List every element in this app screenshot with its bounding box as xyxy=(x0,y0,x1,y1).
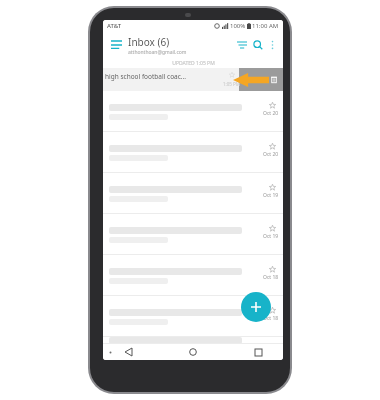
staticText: Oct 18 xyxy=(263,274,279,281)
button[interactable]: Star message xyxy=(103,337,283,344)
staticText: 100% xyxy=(230,22,246,30)
staticText: atthonthoan@gmail.com xyxy=(128,49,187,56)
button[interactable]: Star message xyxy=(103,214,283,255)
button[interactable]: Compose xyxy=(241,292,271,322)
staticText: high school football coac... xyxy=(105,72,187,81)
staticText: Oct 19 xyxy=(263,192,279,199)
staticText: Oct 20 xyxy=(263,110,279,117)
staticText: UPDATED 1:05 PM xyxy=(172,60,215,67)
button[interactable]: Inbox (6) xyxy=(128,35,234,56)
staticText: 11:00 AM xyxy=(252,22,279,30)
button[interactable]: Search xyxy=(250,37,266,53)
staticText: AT&T xyxy=(107,22,122,30)
button[interactable]: Star message xyxy=(267,100,277,110)
button[interactable]: Open navigation menu xyxy=(108,37,124,53)
staticText: Oct 19 xyxy=(263,233,279,240)
button[interactable]: Delete xyxy=(103,68,283,91)
button[interactable]: Star message xyxy=(267,141,277,151)
button[interactable]: Star message xyxy=(103,91,283,132)
button[interactable]: Star message xyxy=(267,264,277,274)
button[interactable]: Back xyxy=(121,345,135,359)
button[interactable]: Star message xyxy=(267,305,277,315)
staticText: 1:05 PM xyxy=(223,81,240,87)
button[interactable]: Home xyxy=(186,345,200,359)
button[interactable]: Sort xyxy=(234,37,250,53)
button[interactable]: Star message xyxy=(103,173,283,214)
staticText: Inbox (6) xyxy=(128,35,170,49)
staticText: Oct 18 xyxy=(263,315,279,322)
button[interactable]: Recent apps xyxy=(251,345,265,359)
button[interactable]: More options xyxy=(266,39,278,51)
button[interactable]: Star message xyxy=(103,296,283,337)
staticText: Oct 20 xyxy=(263,151,279,158)
button[interactable]: Star message xyxy=(267,182,277,192)
button[interactable]: Star message xyxy=(103,132,283,173)
button[interactable]: Star message xyxy=(103,255,283,296)
button[interactable]: Star message xyxy=(267,223,277,233)
button[interactable]: Delete xyxy=(239,68,283,91)
